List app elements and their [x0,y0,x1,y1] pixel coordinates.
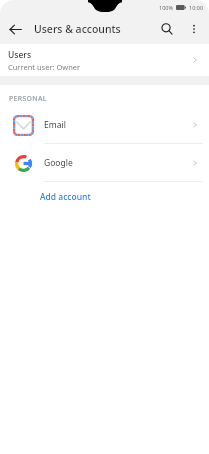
button[interactable]: Google [0,144,209,181]
staticText: Current user: Owner [8,62,81,72]
staticText: 100% [159,4,174,11]
staticText: Users & accounts [34,22,121,36]
button[interactable]: Users [0,44,209,76]
staticText: 10:00 [189,4,204,11]
staticText: Email [44,119,66,131]
button[interactable]: Email [0,106,209,143]
staticText: Add account [40,191,91,203]
button[interactable]: Add account [0,182,209,212]
button[interactable]: Search [153,15,181,43]
staticText: PERSONAL [9,94,47,103]
staticText: Google [44,157,73,169]
button[interactable]: Back [0,14,30,44]
button[interactable]: More options [181,16,207,42]
staticText: Users [8,49,32,61]
